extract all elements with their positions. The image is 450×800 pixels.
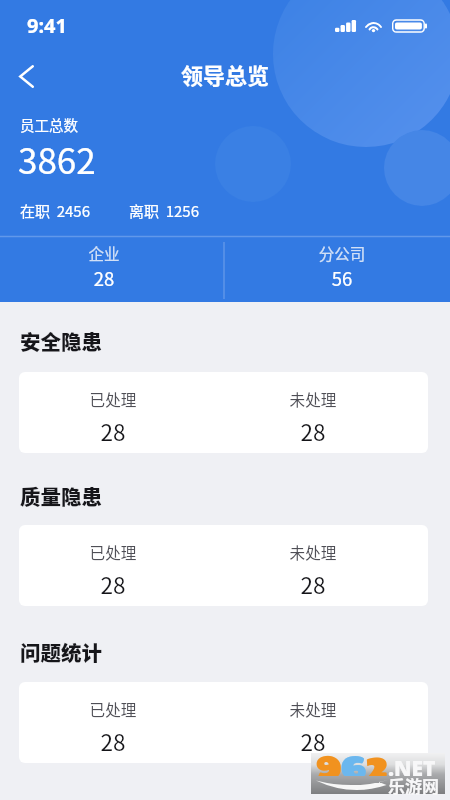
staticText: 已处理 — [53, 698, 173, 721]
staticText: 未处理 — [253, 388, 373, 411]
staticText: 3862 — [18, 133, 96, 184]
staticText: 在职 2456 — [20, 200, 91, 222]
button[interactable]: 企业 — [42, 238, 166, 302]
staticText: .NET — [388, 754, 436, 783]
button[interactable]: Back — [6, 56, 46, 96]
staticText: 已处理 — [53, 388, 173, 411]
staticText: 28 — [42, 265, 166, 292]
staticText: 未处理 — [253, 541, 373, 564]
staticText: 28 — [53, 725, 173, 758]
button[interactable]: 已处理 — [19, 372, 428, 453]
staticText: 安全隐患 — [20, 326, 102, 356]
staticText: 质量隐患 — [20, 481, 102, 511]
staticText: 领导总览 — [0, 58, 450, 90]
staticText: 未处理 — [253, 698, 373, 721]
staticText: 28 — [253, 568, 373, 601]
staticText: 9:41 — [27, 12, 67, 39]
staticText: 28 — [253, 725, 373, 758]
staticText: 6 — [340, 735, 368, 776]
staticText: 企业 — [42, 242, 166, 264]
staticText: 56 — [280, 265, 404, 292]
staticText: 分公司 — [280, 242, 404, 264]
staticText: 问题统计 — [20, 637, 102, 667]
staticText: 28 — [53, 568, 173, 601]
staticText: 28 — [53, 415, 173, 448]
button[interactable]: 已处理 — [19, 525, 428, 606]
staticText: 乐游网 — [388, 773, 439, 798]
button[interactable]: 已处理 — [19, 682, 428, 763]
staticText: 离职 1256 — [129, 200, 200, 222]
button[interactable]: 分公司 — [280, 238, 404, 302]
staticText: 2 — [365, 735, 389, 776]
staticText: 已处理 — [53, 541, 173, 564]
staticText: 员工总数 — [20, 114, 78, 135]
staticText: 28 — [253, 415, 373, 448]
staticText: 9 — [315, 735, 343, 776]
